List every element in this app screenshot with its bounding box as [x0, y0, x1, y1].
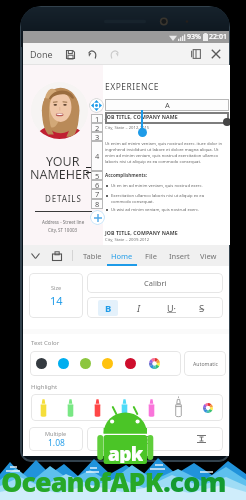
staticText: 1.08: [48, 437, 65, 449]
button[interactable]: Colour: [80, 358, 91, 369]
button[interactable]: B: [87, 297, 223, 318]
staticText: File: [145, 251, 157, 261]
staticText: Table: [83, 251, 102, 261]
staticText: Highlight: [31, 383, 58, 391]
staticText: Exercitation ullamco laboris nisi ut ali…: [111, 193, 205, 199]
button[interactable]: Automatic: [184, 351, 226, 376]
button[interactable]: File: [137, 245, 164, 266]
staticText: I: [137, 302, 141, 315]
staticText: Size: [51, 284, 62, 291]
button[interactable]: I: [129, 300, 149, 316]
staticText: Automatic: [193, 360, 218, 367]
button[interactable]: Line spacing: [139, 431, 155, 447]
button[interactable]: Highlight colour: [118, 395, 130, 421]
button[interactable]: Calibri: [87, 273, 223, 293]
button[interactable]: Colour: [30, 351, 181, 376]
staticText: City, ST 10003: [48, 227, 78, 233]
staticText: U·: [167, 302, 176, 314]
staticText: City, State – 2009-2012: [105, 237, 150, 243]
button[interactable]: View: [194, 245, 222, 266]
button[interactable]: Add row: [90, 210, 105, 225]
button[interactable]: Size: [29, 273, 83, 318]
staticText: Multiple: [45, 430, 67, 437]
button[interactable]: S: [192, 300, 212, 316]
button[interactable]: Highlight colour: [37, 395, 49, 421]
staticText: City, State – 2012-2015: [105, 125, 150, 131]
staticText: View: [200, 251, 217, 261]
staticText: OceanofAPK: [1, 463, 163, 500]
button[interactable]: More colours: [149, 358, 160, 369]
button[interactable]: Paragraph spacing: [193, 431, 209, 447]
staticText: Ut wisi ad minim veniam, quis nostrud ex…: [111, 207, 200, 213]
staticText: commodo consequat.: [111, 199, 154, 205]
staticText: ingrehend insididunt ut labore et dolore…: [105, 147, 219, 153]
staticText: EXPERIENCE: [105, 81, 160, 93]
staticText: S: [199, 302, 205, 315]
staticText: .com: [163, 463, 226, 500]
staticText: 22:01: [209, 32, 227, 42]
button[interactable]: Close: [207, 45, 225, 63]
staticText: 2: [95, 123, 100, 132]
button[interactable]: Home: [107, 245, 137, 266]
staticText: Ut enim ad minim veniam, quis nostrud ex…: [105, 141, 223, 147]
staticText: JOB TITLE, COMPANY NAME: [105, 113, 178, 120]
button[interactable]: Insert: [164, 245, 194, 266]
button[interactable]: Table: [77, 245, 107, 266]
staticText: 14: [50, 293, 63, 308]
staticText: JOB TITLE, COMPANY NAME: [105, 229, 178, 236]
staticText: NAMEHERE: [30, 166, 97, 183]
button[interactable]: Colour: [102, 358, 113, 369]
staticText: Home: [111, 251, 133, 261]
button[interactable]: Colour: [36, 358, 47, 369]
staticText: Done: [30, 48, 53, 60]
button[interactable]: Highlight colour: [91, 395, 103, 421]
staticText: Insert: [169, 251, 190, 261]
button[interactable]: Highlight colour: [31, 394, 223, 421]
button[interactable]: Undo: [84, 45, 102, 63]
button[interactable]: No highlight: [172, 395, 184, 421]
button[interactable]: Done: [28, 43, 55, 65]
button[interactable]: Clipboard: [49, 248, 65, 264]
staticText: 6: [95, 180, 100, 189]
staticText: 7: [95, 189, 100, 199]
staticText: Accomplishments:: [105, 172, 148, 178]
button[interactable]: Colour: [58, 358, 69, 369]
button[interactable]: Save: [61, 45, 79, 63]
button[interactable]: Highlight colour: [145, 395, 157, 421]
staticText: 4: [95, 151, 100, 161]
button[interactable]: Line spacing: [87, 427, 223, 451]
staticText: B: [105, 302, 112, 315]
button[interactable]: Multiple: [29, 427, 83, 451]
button[interactable]: Redo: [105, 45, 123, 63]
staticText: Calibri: [144, 278, 167, 288]
staticText: enim ad minim veniam, quis nostrud exerc…: [105, 153, 219, 159]
button[interactable]: B: [98, 300, 118, 316]
button[interactable]: More highlight colours: [203, 403, 213, 413]
staticText: 93%: [187, 32, 201, 42]
button[interactable]: Highlight colour: [64, 395, 76, 421]
staticText: Ut en im ad minim veniam, quis nostrud e…: [111, 183, 203, 189]
staticText: 1: [95, 114, 100, 123]
staticText: 8: [95, 199, 100, 209]
staticText: 5: [95, 171, 100, 180]
button[interactable]: Colour: [125, 358, 136, 369]
button[interactable]: U·: [161, 300, 181, 316]
staticText: 3: [95, 132, 100, 141]
staticText: Address - Street line: [42, 219, 85, 225]
button[interactable]: Collapse: [27, 248, 43, 264]
staticText: Text Color: [31, 339, 60, 347]
staticText: A: [165, 100, 170, 110]
button[interactable]: Duplicate: [187, 45, 205, 63]
staticText: laboris nisi ut aliquip ex ea commodo co…: [105, 159, 202, 165]
staticText: apk: [108, 441, 143, 463]
staticText: DETAILS: [45, 193, 82, 204]
staticText: YOUR: [46, 153, 80, 170]
